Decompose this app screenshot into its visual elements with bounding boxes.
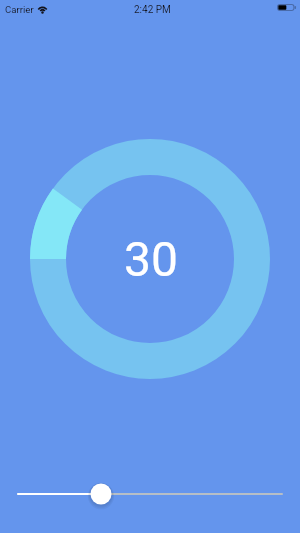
staticText: Carrier — [5, 4, 34, 15]
other: Battery — [277, 4, 296, 11]
other: Wi-Fi — [37, 5, 48, 13]
button[interactable]: Timer progress — [30, 139, 270, 379]
button[interactable]: Duration slider — [6, 483, 294, 505]
staticText: 30 — [124, 231, 178, 287]
staticText: 2:42 PM — [134, 4, 171, 16]
